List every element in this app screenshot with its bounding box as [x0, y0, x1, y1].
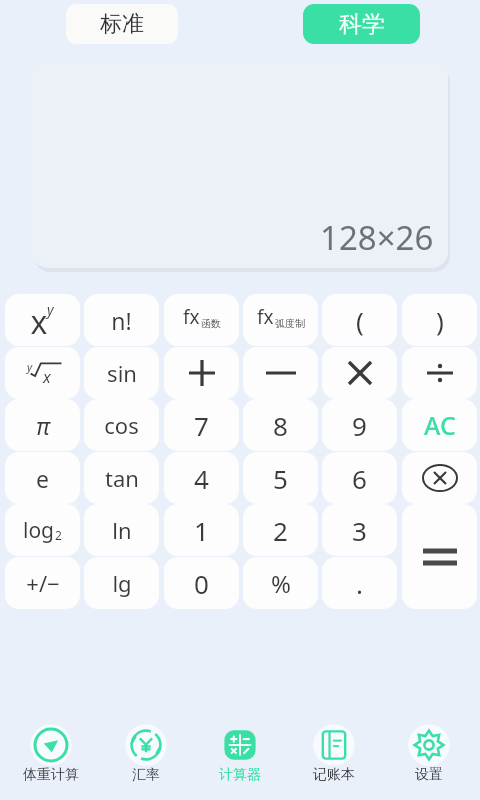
button[interactable]: .: [322, 557, 397, 609]
button[interactable]: 科学: [303, 4, 420, 44]
button[interactable]: log base 2: [5, 504, 80, 556]
button[interactable]: 8: [243, 399, 318, 451]
staticText: 2: [55, 527, 62, 543]
button[interactable]: Equals: [402, 504, 477, 609]
button[interactable]: 设置: [386, 724, 472, 796]
staticText: e: [36, 463, 49, 494]
staticText: ): [436, 303, 444, 338]
staticText: y: [47, 300, 54, 319]
button[interactable]: cos: [84, 399, 159, 451]
button[interactable]: 记账本: [291, 724, 377, 796]
button[interactable]: π: [5, 399, 80, 451]
button[interactable]: 3: [322, 504, 397, 556]
button[interactable]: tan: [84, 452, 159, 504]
button[interactable]: 体重计算: [8, 724, 94, 796]
staticText: 9: [352, 408, 367, 443]
staticText: fx: [183, 304, 200, 330]
button[interactable]: x to the power y: [5, 294, 80, 346]
button[interactable]: lg: [84, 557, 159, 609]
button[interactable]: 5: [243, 452, 318, 504]
staticText: 8: [273, 408, 288, 443]
button[interactable]: Divide: [402, 347, 477, 399]
button[interactable]: 汇率: [103, 724, 189, 796]
staticText: 函数: [201, 317, 221, 330]
staticText: 128×26: [320, 215, 434, 260]
button[interactable]: 0: [164, 557, 239, 609]
staticText: lg: [112, 568, 132, 598]
staticText: cos: [104, 410, 139, 440]
button[interactable]: fx: [243, 294, 318, 346]
staticText: AC: [424, 408, 456, 442]
staticText: (: [356, 303, 364, 338]
button[interactable]: 4: [164, 452, 239, 504]
staticText: 7: [194, 408, 209, 443]
button[interactable]: e: [5, 452, 80, 504]
staticText: y: [27, 359, 33, 374]
staticText: 4: [194, 461, 209, 496]
button[interactable]: 2: [243, 504, 318, 556]
staticText: 0: [194, 566, 209, 601]
button[interactable]: 9: [322, 399, 397, 451]
staticText: %: [271, 567, 291, 600]
staticText: x: [43, 366, 51, 388]
staticText: log: [23, 516, 55, 545]
button[interactable]: ): [402, 294, 477, 346]
button[interactable]: n!: [84, 294, 159, 346]
staticText: X: [31, 306, 47, 341]
button[interactable]: 标准: [66, 4, 178, 44]
button[interactable]: Minus: [243, 347, 318, 399]
button[interactable]: Plus: [164, 347, 239, 399]
button[interactable]: fx: [164, 294, 239, 346]
staticText: 记账本: [313, 766, 355, 784]
staticText: 标准: [100, 10, 144, 38]
staticText: 计算器: [219, 766, 261, 784]
staticText: 2: [273, 513, 288, 548]
button[interactable]: (: [322, 294, 397, 346]
staticText: 3: [352, 513, 367, 548]
staticText: +/−: [26, 568, 60, 598]
button[interactable]: 7: [164, 399, 239, 451]
staticText: tan: [105, 463, 139, 493]
button[interactable]: y-th root of x: [5, 347, 80, 399]
staticText: 6: [352, 461, 367, 496]
staticText: sin: [107, 358, 137, 388]
staticText: 设置: [415, 766, 443, 784]
staticText: .: [356, 566, 363, 601]
staticText: n!: [111, 305, 132, 336]
staticText: 科学: [339, 10, 385, 39]
button[interactable]: Clear entry: [402, 452, 477, 504]
button[interactable]: Multiply: [322, 347, 397, 399]
button[interactable]: sin: [84, 347, 159, 399]
button[interactable]: %: [243, 557, 318, 609]
staticText: 1: [194, 513, 209, 548]
staticText: fx: [257, 304, 274, 330]
button[interactable]: +/−: [5, 557, 80, 609]
staticText: 弧度制: [275, 317, 305, 330]
button[interactable]: 计算器: [197, 724, 283, 796]
staticText: π: [36, 410, 50, 441]
button[interactable]: AC: [402, 399, 477, 451]
button[interactable]: 1: [164, 504, 239, 556]
button[interactable]: 6: [322, 452, 397, 504]
staticText: 体重计算: [23, 766, 79, 784]
staticText: ln: [112, 515, 132, 545]
staticText: 5: [273, 461, 288, 496]
staticText: 汇率: [132, 766, 160, 784]
button[interactable]: ln: [84, 504, 159, 556]
